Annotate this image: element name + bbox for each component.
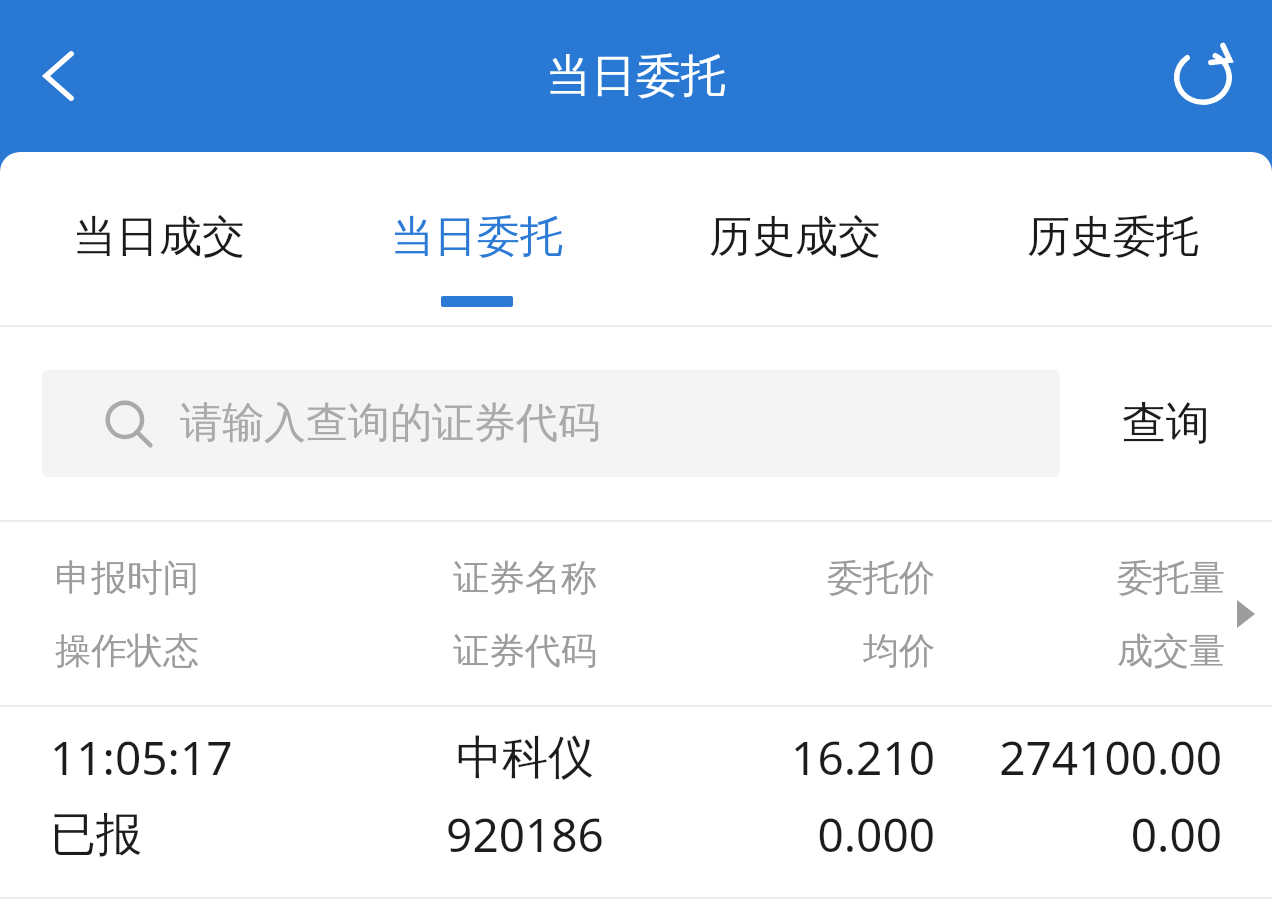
staticText: 委托量: [935, 555, 1225, 600]
button[interactable]: 当日委托: [318, 152, 636, 325]
button[interactable]: Refresh: [1142, 0, 1272, 152]
button[interactable]: 历史委托: [954, 152, 1272, 325]
button[interactable]: 历史成交: [636, 152, 954, 325]
button[interactable]: 请输入查询的证券代码: [42, 370, 1060, 477]
staticText: 证券代码: [400, 628, 650, 673]
staticText: 当日委托: [546, 48, 726, 105]
staticText: 证券名称: [400, 555, 650, 600]
staticText: 0.00: [935, 803, 1222, 866]
button[interactable]: Scroll right: [1220, 522, 1272, 705]
button[interactable]: 当日成交: [0, 152, 318, 325]
staticText: 11:05:17: [50, 726, 400, 789]
staticText: 已报: [50, 806, 400, 864]
staticText: 请输入查询的证券代码: [180, 397, 600, 450]
staticText: 当日成交: [73, 210, 245, 264]
staticText: 16.210: [650, 726, 935, 789]
button[interactable]: 11:05:17: [0, 707, 1272, 897]
staticText: 920186: [400, 803, 650, 866]
staticText: 申报时间: [55, 555, 400, 600]
button[interactable]: 查询: [1060, 370, 1272, 477]
staticText: 中科仪: [400, 729, 650, 787]
button[interactable]: Back: [0, 0, 120, 152]
staticText: 0.000: [650, 803, 935, 866]
staticText: 274100.00: [935, 726, 1222, 789]
staticText: 当日委托: [391, 210, 563, 264]
staticText: 历史委托: [1027, 210, 1199, 264]
staticText: 委托价: [650, 555, 935, 600]
staticText: 均价: [650, 628, 935, 673]
staticText: 成交量: [935, 628, 1225, 673]
staticText: 操作状态: [55, 628, 400, 673]
staticText: 查询: [1122, 396, 1210, 451]
staticText: 历史成交: [709, 210, 881, 264]
